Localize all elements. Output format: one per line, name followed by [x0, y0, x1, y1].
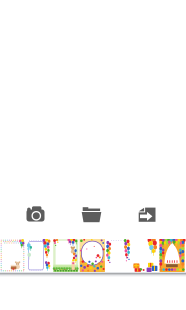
button[interactable]: Garden frame — [53, 239, 78, 272]
button[interactable]: Sunburst frame — [80, 239, 105, 272]
button[interactable]: Party frame — [106, 239, 131, 272]
button[interactable]: Birthday frame — [160, 239, 185, 272]
button[interactable]: Confetti frame — [0, 239, 25, 272]
button[interactable]: Take Photo — [14, 201, 57, 227]
button[interactable]: Gifts frame — [133, 239, 158, 272]
button[interactable]: Open Album — [70, 201, 113, 227]
button[interactable]: Share — [125, 201, 168, 227]
button[interactable]: Balloon frame — [27, 239, 52, 272]
